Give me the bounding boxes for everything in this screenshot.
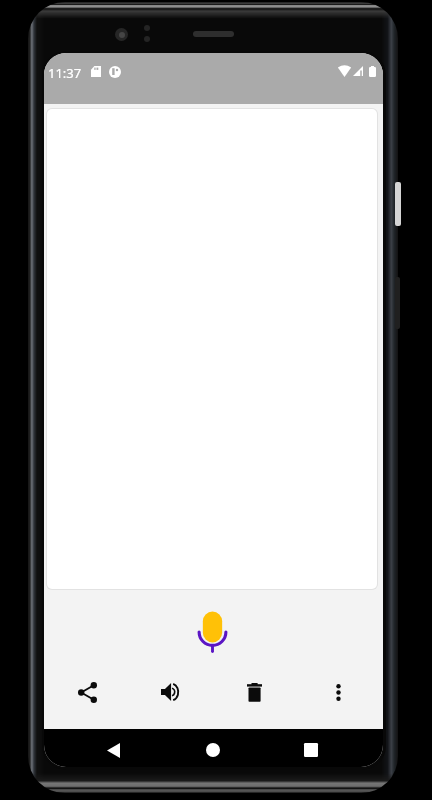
- button[interactable]: Recents: [292, 731, 330, 767]
- button[interactable]: More options: [316, 670, 360, 714]
- button[interactable]: Back: [94, 731, 132, 767]
- button[interactable]: Home: [194, 731, 232, 767]
- staticText: 11:37: [48, 64, 82, 82]
- button[interactable]: Record: [197, 611, 228, 653]
- button[interactable]: Delete: [232, 670, 276, 714]
- button[interactable]: Share: [65, 670, 109, 714]
- button[interactable]: Volume: [148, 670, 192, 714]
